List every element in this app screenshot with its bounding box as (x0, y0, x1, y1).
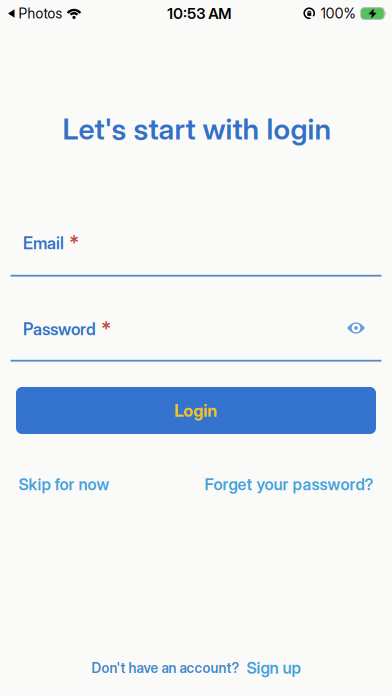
button[interactable]: Skip for now (18, 475, 109, 494)
button[interactable]: Email (0, 230, 392, 278)
staticText: Email (23, 233, 64, 253)
button[interactable]: Show password (347, 322, 365, 334)
staticText: Forget your password? (204, 475, 373, 494)
staticText: Don't have an account? (91, 660, 239, 676)
staticText: Password (23, 319, 96, 339)
staticText: Let's start with login (62, 111, 331, 147)
button[interactable]: Back to Photos (8, 5, 81, 22)
staticText: * (101, 317, 111, 341)
staticText: * (69, 231, 79, 255)
button[interactable]: Forget your password? (204, 475, 373, 494)
staticText: Login (174, 400, 217, 421)
button[interactable]: Login (16, 387, 376, 434)
staticText: 10:53 AM (167, 4, 231, 22)
staticText: 100% (321, 5, 356, 22)
staticText: Skip for now (18, 475, 109, 494)
staticText: Sign up (246, 658, 300, 678)
button[interactable]: Sign up (246, 658, 300, 678)
button[interactable]: Password (0, 316, 392, 364)
staticText: Photos (18, 5, 62, 22)
